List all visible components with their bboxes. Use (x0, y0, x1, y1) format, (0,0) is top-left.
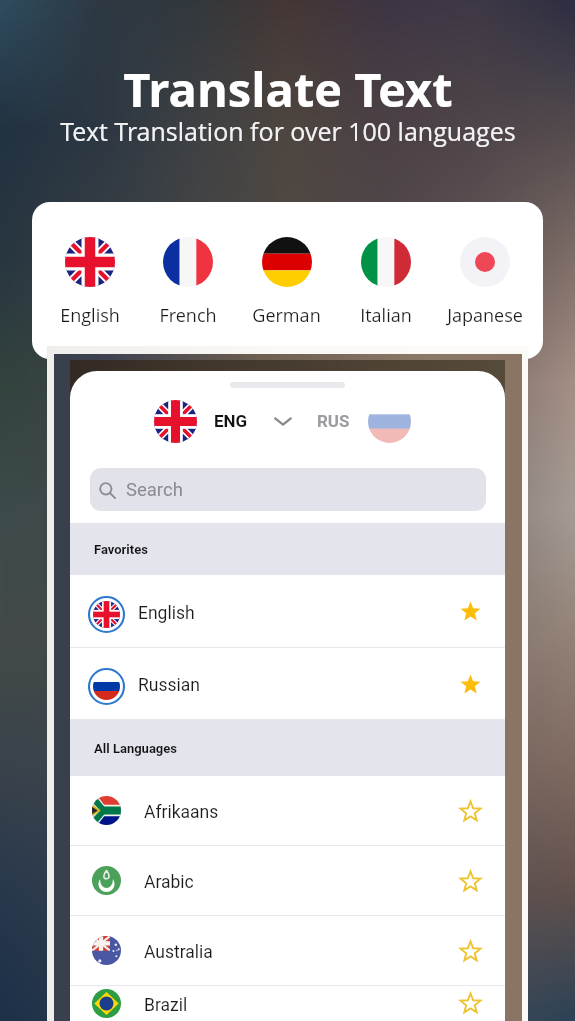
button[interactable]: Favorite Brazil (450, 986, 490, 1021)
button[interactable]: Favorite Arabic (450, 861, 490, 901)
staticText: French (159, 303, 217, 328)
button[interactable]: English (41, 202, 139, 359)
staticText: English (138, 603, 195, 624)
staticText: Translate Text (123, 57, 453, 121)
staticText: Russian (138, 675, 200, 696)
staticText: Arabic (144, 872, 194, 893)
button[interactable]: Italian (336, 202, 435, 359)
staticText: Text Translation for over 100 languages (60, 114, 516, 148)
button[interactable]: Search (90, 468, 486, 511)
button[interactable]: Favorite Australia (450, 931, 490, 971)
staticText: All Languages (94, 741, 177, 756)
staticText: Australia (144, 942, 213, 963)
button[interactable]: Arabic (70, 846, 505, 915)
button[interactable]: Afrikaans (70, 776, 505, 845)
staticText: Italian (360, 303, 412, 328)
staticText: Favorites (94, 542, 148, 557)
staticText: Afrikaans (144, 802, 219, 823)
button[interactable]: Brazil (70, 986, 505, 1021)
button[interactable]: Japanese (435, 202, 534, 359)
button[interactable]: Australia (70, 916, 505, 985)
button[interactable]: Favorite English (450, 591, 490, 631)
button[interactable]: French (139, 202, 237, 359)
staticText: English (60, 303, 120, 328)
button[interactable]: German (237, 202, 336, 359)
button[interactable]: English (70, 575, 505, 647)
button[interactable]: Favorite Russian (450, 664, 490, 704)
staticText: RUS (317, 411, 350, 431)
button[interactable]: Russian (70, 648, 505, 719)
button[interactable]: Change language (270, 408, 296, 434)
staticText: Search (126, 479, 183, 501)
staticText: German (252, 303, 321, 328)
staticText: Brazil (144, 995, 188, 1016)
staticText: ENG (214, 411, 248, 431)
button[interactable]: Favorite Afrikaans (450, 791, 490, 831)
staticText: Japanese (447, 303, 523, 328)
